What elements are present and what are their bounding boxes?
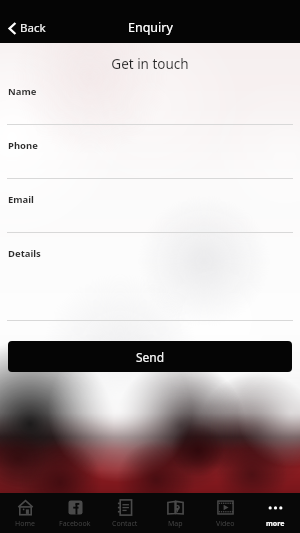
button[interactable]: Contact — [100, 493, 150, 533]
button[interactable]: Map — [150, 493, 200, 533]
button[interactable] — [0, 98, 300, 124]
staticText: Phone — [8, 139, 38, 152]
staticText: Map — [168, 519, 183, 529]
button[interactable]: Back — [0, 15, 58, 41]
button[interactable]: Video — [200, 493, 250, 533]
staticText: Video — [216, 519, 235, 529]
button[interactable]: more — [250, 493, 300, 533]
button[interactable]: Facebook — [50, 493, 100, 533]
button[interactable] — [0, 260, 300, 320]
staticText: Home — [15, 519, 35, 529]
staticText: Email — [8, 193, 34, 206]
staticText: Contact — [112, 519, 138, 529]
staticText: Facebook — [59, 519, 91, 529]
staticText: more — [266, 519, 285, 529]
staticText: Send — [136, 349, 165, 365]
staticText: Enquiry — [128, 19, 173, 36]
staticText: Details — [8, 247, 41, 260]
staticText: Name — [8, 85, 37, 98]
staticText: Get in touch — [0, 55, 300, 73]
staticText: Back — [20, 20, 46, 36]
button[interactable]: Home — [0, 493, 50, 533]
button[interactable]: Send — [8, 341, 292, 372]
